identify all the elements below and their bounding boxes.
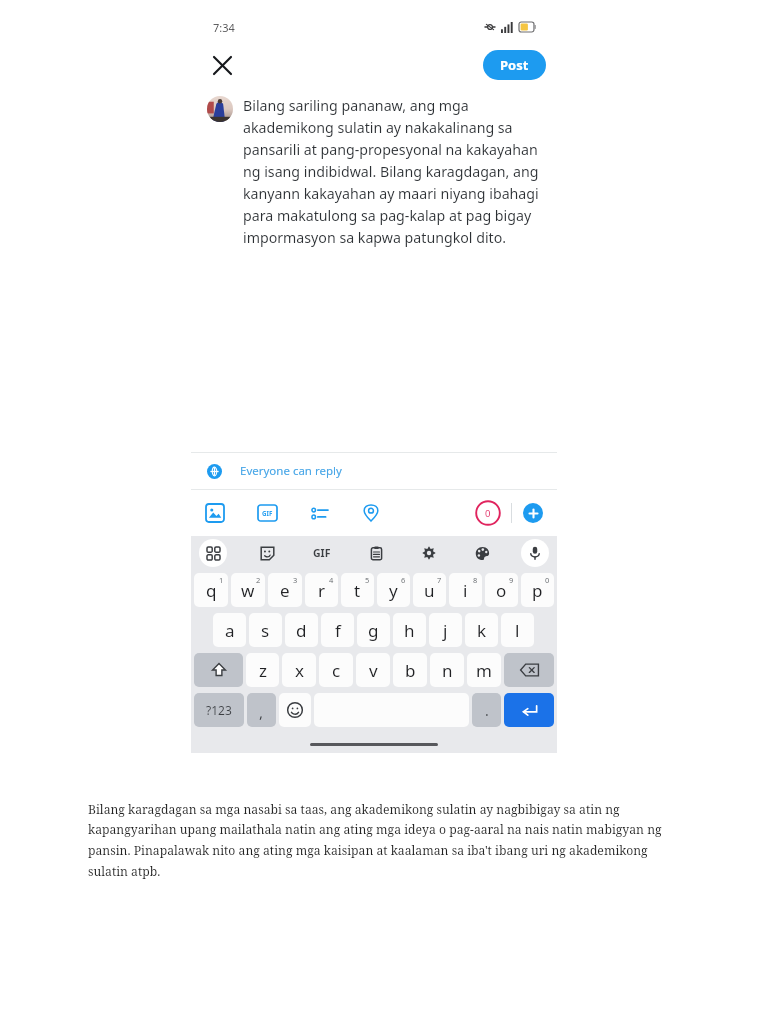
button[interactable]: Profile picture xyxy=(207,96,233,122)
button[interactable]: o xyxy=(485,573,518,607)
button[interactable]: s xyxy=(249,613,282,647)
button[interactable]: r xyxy=(305,573,338,607)
staticText: 4 xyxy=(329,575,334,585)
staticText: 5 xyxy=(365,575,370,585)
staticText: n xyxy=(442,659,453,682)
button[interactable]: Enter xyxy=(504,693,554,727)
button[interactable]: l xyxy=(501,613,534,647)
button[interactable]: j xyxy=(429,613,462,647)
button[interactable]: Post xyxy=(483,50,546,80)
button[interactable]: Backspace xyxy=(504,653,554,687)
button[interactable]: Emoji xyxy=(279,693,311,727)
staticText: r xyxy=(318,579,326,602)
button[interactable]: i xyxy=(449,573,482,607)
staticText: a xyxy=(225,619,235,642)
staticText: o xyxy=(496,579,507,602)
staticText: GIF xyxy=(313,546,331,560)
button[interactable]: Voice input xyxy=(521,539,549,567)
button[interactable]: k xyxy=(465,613,498,647)
staticText: e xyxy=(280,579,290,602)
staticText: i xyxy=(463,579,468,602)
staticText: f xyxy=(335,619,341,642)
button[interactable]: Theme xyxy=(468,539,496,567)
button[interactable]: . xyxy=(472,693,501,727)
button[interactable]: ?123 xyxy=(194,693,244,727)
button[interactable]: u xyxy=(413,573,446,607)
staticText: . xyxy=(485,701,489,720)
button[interactable]: g xyxy=(357,613,390,647)
staticText: z xyxy=(259,659,267,682)
staticText: h xyxy=(404,619,415,642)
staticText: Everyone can reply xyxy=(240,463,342,479)
button[interactable]: Clipboard xyxy=(362,539,390,567)
staticText: t xyxy=(354,579,361,602)
staticText: Post xyxy=(500,56,529,74)
staticText: , xyxy=(259,702,264,722)
staticText: 1 xyxy=(219,575,224,585)
staticText: GIF xyxy=(262,509,273,517)
staticText: m xyxy=(476,659,492,682)
staticText: 6 xyxy=(401,575,406,585)
button[interactable]: z xyxy=(246,653,279,687)
button[interactable]: w xyxy=(231,573,265,607)
staticText: s xyxy=(261,619,270,642)
staticText: y xyxy=(389,579,398,602)
staticText: c xyxy=(332,659,341,682)
staticText: 0 xyxy=(485,507,491,520)
button[interactable]: , xyxy=(247,693,276,727)
staticText: q xyxy=(206,579,217,602)
staticText: 7:34 xyxy=(213,20,235,35)
button[interactable]: a xyxy=(213,613,246,647)
button[interactable]: m xyxy=(467,653,501,687)
button[interactable]: Settings xyxy=(415,539,443,567)
staticText: 3 xyxy=(293,575,298,585)
button[interactable]: Add poll xyxy=(306,500,332,526)
button[interactable]: Character count xyxy=(475,500,501,526)
staticText: 2 xyxy=(256,575,261,585)
staticText: u xyxy=(424,579,435,602)
staticText: v xyxy=(369,659,378,682)
button[interactable]: Add location xyxy=(358,500,384,526)
staticText: 8 xyxy=(473,575,478,585)
staticText: b xyxy=(405,659,416,682)
button[interactable]: Add photo xyxy=(202,500,228,526)
button[interactable]: Everyone can reply xyxy=(191,453,557,489)
button[interactable]: c xyxy=(319,653,353,687)
staticText: 0 xyxy=(545,575,550,585)
staticText: Bilang sariling pananaw, ang mga akademi… xyxy=(243,96,543,248)
staticText: 7 xyxy=(437,575,442,585)
button[interactable]: p xyxy=(521,573,554,607)
button[interactable]: Shift xyxy=(194,653,243,687)
button[interactable]: Add GIF xyxy=(254,500,280,526)
staticText: 9 xyxy=(509,575,514,585)
button[interactable]: GIF xyxy=(307,538,337,568)
button[interactable]: f xyxy=(321,613,354,647)
staticText: k xyxy=(477,619,487,642)
button[interactable]: x xyxy=(282,653,316,687)
button[interactable]: h xyxy=(393,613,426,647)
button[interactable]: y xyxy=(377,573,410,607)
button[interactable]: Add another post xyxy=(523,503,543,523)
button[interactable]: q xyxy=(194,573,228,607)
button[interactable]: e xyxy=(268,573,302,607)
button[interactable]: b xyxy=(393,653,427,687)
staticText: d xyxy=(296,619,307,642)
button[interactable]: v xyxy=(356,653,390,687)
button[interactable]: n xyxy=(430,653,464,687)
button[interactable]: Close xyxy=(207,50,237,80)
staticText: p xyxy=(532,579,543,602)
staticText: g xyxy=(368,619,379,642)
button[interactable]: Stickers xyxy=(253,539,281,567)
staticText: w xyxy=(241,579,255,602)
staticText: j xyxy=(443,619,448,642)
staticText: l xyxy=(515,619,520,642)
staticText: x xyxy=(295,659,304,682)
button[interactable]: Apps xyxy=(199,539,227,567)
staticText: Bilang karagdagan sa mga nasabi sa taas,… xyxy=(88,801,674,880)
button[interactable]: d xyxy=(285,613,318,647)
staticText: ?123 xyxy=(206,702,232,718)
button[interactable]: t xyxy=(341,573,374,607)
